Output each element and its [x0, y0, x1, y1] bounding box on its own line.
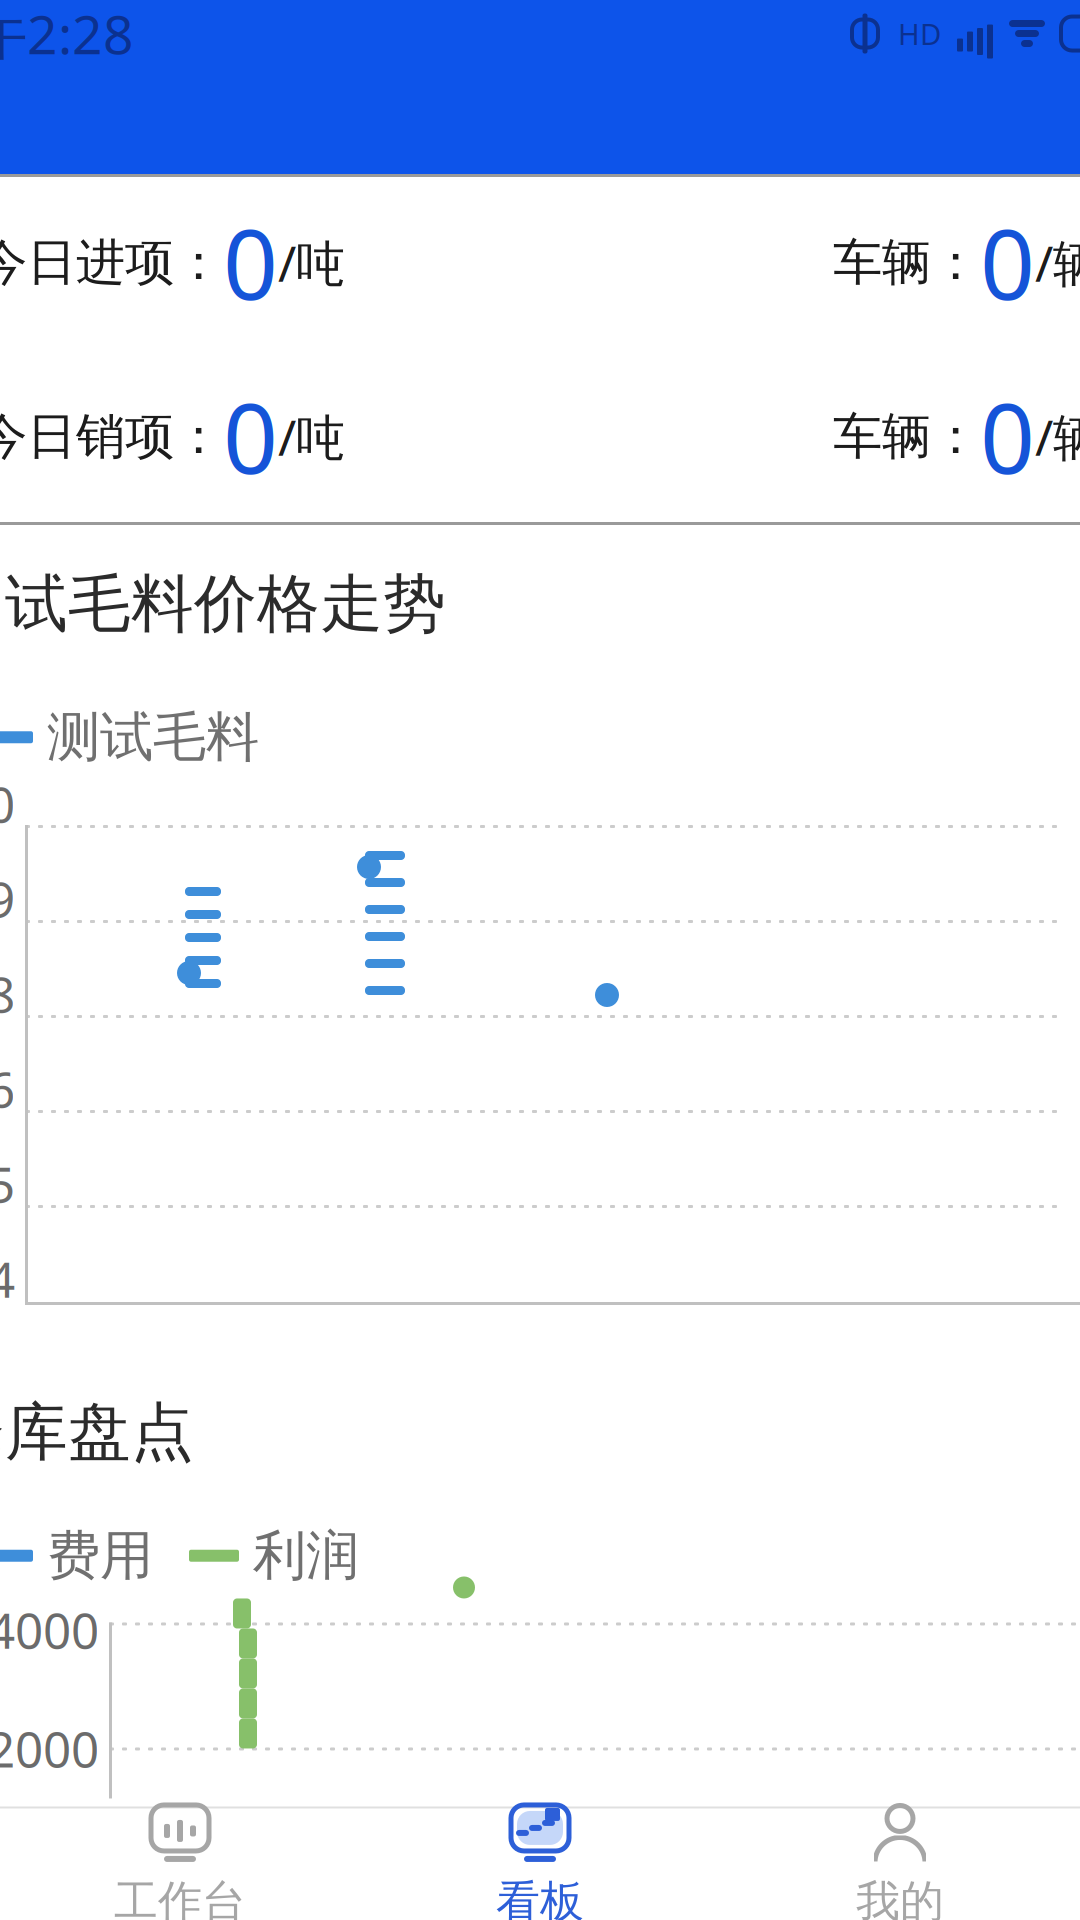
staticText: 0 — [980, 199, 1035, 326]
staticText: 3435 — [0, 1151, 15, 1216]
staticText: 11040000 — [0, 1597, 99, 1728]
staticText: /辆 — [1035, 404, 1080, 469]
staticText: 3619 — [0, 866, 15, 931]
staticText: 看板 — [496, 1874, 584, 1920]
staticText: 测试毛料价格走势 — [0, 565, 446, 642]
staticText: 3680 — [0, 771, 15, 836]
staticText: 3496 — [0, 1056, 15, 1121]
button[interactable]: 看板 — [360, 1808, 720, 1920]
staticText: HD — [898, 14, 941, 53]
staticText: 今日进项： — [0, 232, 223, 293]
staticText: /吨 — [278, 404, 345, 469]
staticText: 利润 — [253, 1523, 359, 1588]
staticText: 3374 — [0, 1246, 15, 1311]
staticText: 0 — [223, 199, 278, 326]
staticText: 0 — [980, 373, 1035, 500]
staticText: 8832000 — [0, 1716, 99, 1781]
staticText: 我的 — [856, 1874, 944, 1920]
staticText: 车辆： — [833, 232, 980, 293]
staticText: 下午2:28 — [0, 0, 134, 69]
staticText: 车辆： — [833, 406, 980, 467]
button[interactable]: 我的 — [720, 1808, 1080, 1920]
staticText: 3558 — [0, 961, 15, 1026]
staticText: 测试毛料 — [47, 704, 259, 770]
staticText: 仓库盘点 — [0, 1394, 194, 1471]
staticText: /辆 — [1035, 230, 1080, 295]
staticText: /吨 — [278, 230, 345, 295]
staticText: 工作台 — [114, 1874, 246, 1920]
staticText: 0 — [223, 373, 278, 500]
button[interactable]: 工作台 — [0, 1808, 360, 1920]
staticText: 今日销项： — [0, 406, 223, 467]
staticText: 费用 — [47, 1523, 153, 1588]
